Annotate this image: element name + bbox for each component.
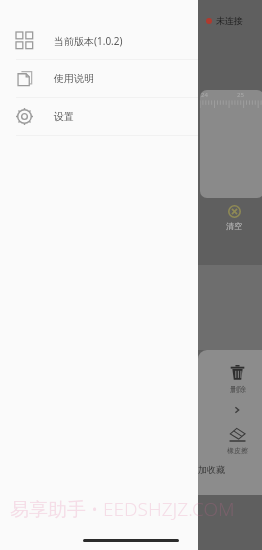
button[interactable]: 当前版本(1.0.2) [0,22,198,59]
staticText: 使用说明 [54,72,94,85]
staticText: 加收藏 [198,464,225,475]
button[interactable]: 删除 [229,364,246,394]
staticText: 删除 [230,384,246,394]
staticText: 设置 [54,110,74,123]
staticText: 当前版本(1.0.2) [54,34,123,48]
staticText: 橡皮擦 [227,446,248,455]
button[interactable]: 清空 [226,205,242,231]
staticText: 清空 [226,221,242,231]
staticText: 易享助手 • EEDSHZJZ.COM [10,496,235,522]
button[interactable]: 未连接 [206,15,243,26]
staticText: 未连接 [216,15,243,26]
staticText: 24 [201,91,208,99]
button[interactable]: 橡皮擦 [227,425,248,455]
button[interactable]: 使用说明 [0,60,198,97]
button[interactable]: More [230,403,244,417]
staticText: 25 [237,91,244,99]
button[interactable]: 设置 [0,98,198,135]
